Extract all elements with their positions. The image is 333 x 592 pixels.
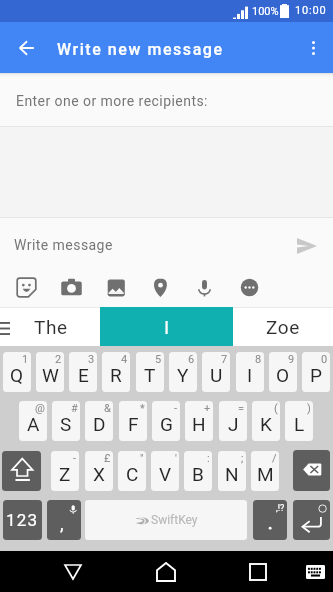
button[interactable]: *	[119, 401, 147, 441]
button[interactable]: Numbers and symbols	[3, 500, 42, 540]
button[interactable]: Camera	[55, 269, 87, 305]
button[interactable]: Location	[144, 269, 176, 305]
staticText: U	[210, 364, 223, 386]
staticText: 2	[55, 353, 62, 366]
button[interactable]: 7	[202, 352, 230, 392]
staticText: 3	[88, 353, 95, 366]
button[interactable]: 5	[136, 352, 164, 392]
staticText: T	[144, 364, 156, 386]
staticText: R	[110, 364, 122, 386]
button[interactable]: +	[185, 401, 213, 441]
staticText: ,!?	[276, 503, 285, 514]
button[interactable]: /	[251, 451, 279, 491]
staticText: *	[140, 402, 145, 415]
staticText: E	[78, 364, 89, 386]
staticText: D	[93, 413, 106, 435]
staticText: @	[35, 402, 45, 415]
staticText: 8	[255, 353, 262, 366]
staticText: &	[104, 402, 111, 415]
button[interactable]: :	[184, 451, 212, 491]
staticText: ;	[241, 452, 244, 465]
button[interactable]: -	[51, 451, 79, 491]
staticText: P	[310, 364, 322, 386]
button[interactable]: Gallery	[99, 269, 131, 305]
staticText: 0	[321, 353, 328, 366]
staticText: L	[294, 413, 305, 435]
staticText: N	[225, 463, 239, 485]
staticText: -	[73, 452, 77, 465]
staticText: J	[228, 413, 239, 435]
button[interactable]: More attachments	[233, 269, 265, 305]
staticText: SwiftKey	[151, 513, 198, 527]
staticText: S	[60, 413, 72, 435]
button[interactable]: Period	[253, 500, 287, 540]
button[interactable]: "	[118, 451, 146, 491]
button[interactable]: &	[85, 401, 113, 441]
staticText: )	[307, 402, 311, 415]
button[interactable]: ;	[218, 451, 246, 491]
button[interactable]: (	[252, 401, 280, 441]
button[interactable]: Home	[141, 551, 191, 592]
staticText: C	[126, 463, 139, 485]
staticText: H	[192, 413, 206, 435]
button[interactable]: @	[19, 401, 47, 441]
button[interactable]: Recent apps	[233, 551, 283, 592]
staticText: :	[207, 452, 210, 465]
button[interactable]: 9	[269, 352, 297, 392]
staticText: (	[274, 402, 278, 415]
staticText: A	[27, 413, 40, 435]
staticText: The	[34, 316, 68, 338]
staticText: ,	[60, 513, 64, 534]
other: Keyboard layout menu	[0, 322, 10, 335]
button[interactable]: £	[85, 451, 113, 491]
staticText: Enter one or more recipients:	[16, 93, 208, 109]
button[interactable]: Send	[292, 231, 322, 261]
button[interactable]: 2	[36, 352, 64, 392]
button[interactable]: The	[0, 307, 100, 346]
button[interactable]: 0	[302, 352, 330, 392]
button[interactable]: Voice message	[188, 269, 220, 305]
staticText: #	[71, 402, 78, 415]
staticText: =	[238, 402, 245, 415]
button[interactable]: 4	[102, 352, 130, 392]
staticText: F	[128, 413, 139, 435]
staticText: W	[42, 364, 59, 386]
button[interactable]: Shift	[2, 451, 41, 491]
button[interactable]: 6	[169, 352, 197, 392]
button[interactable]: More options	[297, 32, 329, 64]
button[interactable]: Enter	[293, 500, 330, 540]
button[interactable]: 3	[69, 352, 97, 392]
button[interactable]: Back	[48, 551, 98, 592]
staticText: V	[159, 463, 172, 485]
staticText: 5	[155, 353, 162, 366]
staticText: 7	[221, 353, 228, 366]
button[interactable]: 1	[3, 352, 31, 392]
staticText: 9	[288, 353, 295, 366]
staticText: Q	[10, 364, 24, 386]
staticText: 100%	[252, 5, 279, 18]
button[interactable]: Zoe	[233, 307, 333, 346]
button[interactable]: Sticker	[10, 269, 42, 305]
button[interactable]: 8	[236, 352, 264, 392]
button[interactable]: Comma	[47, 500, 81, 540]
button[interactable]: -	[152, 401, 180, 441]
button[interactable]: Backspace	[293, 450, 330, 491]
staticText: Z	[59, 463, 71, 485]
button[interactable]: '	[151, 451, 179, 491]
button[interactable]: I	[100, 307, 233, 346]
staticText: X	[93, 463, 105, 485]
staticText: "	[140, 452, 144, 465]
staticText: O	[276, 364, 290, 386]
button[interactable]: =	[219, 401, 247, 441]
staticText: '	[175, 452, 177, 465]
button[interactable]: Switch keyboard	[295, 551, 333, 592]
staticText: 6	[188, 353, 195, 366]
button[interactable]: Space	[85, 500, 247, 540]
staticText: 123	[6, 510, 39, 530]
button[interactable]: )	[285, 401, 313, 441]
staticText: M	[257, 463, 274, 485]
button[interactable]: #	[52, 401, 80, 441]
staticText: Zoe	[266, 316, 300, 338]
button[interactable]: Back	[10, 32, 42, 64]
staticText: -	[174, 402, 178, 415]
